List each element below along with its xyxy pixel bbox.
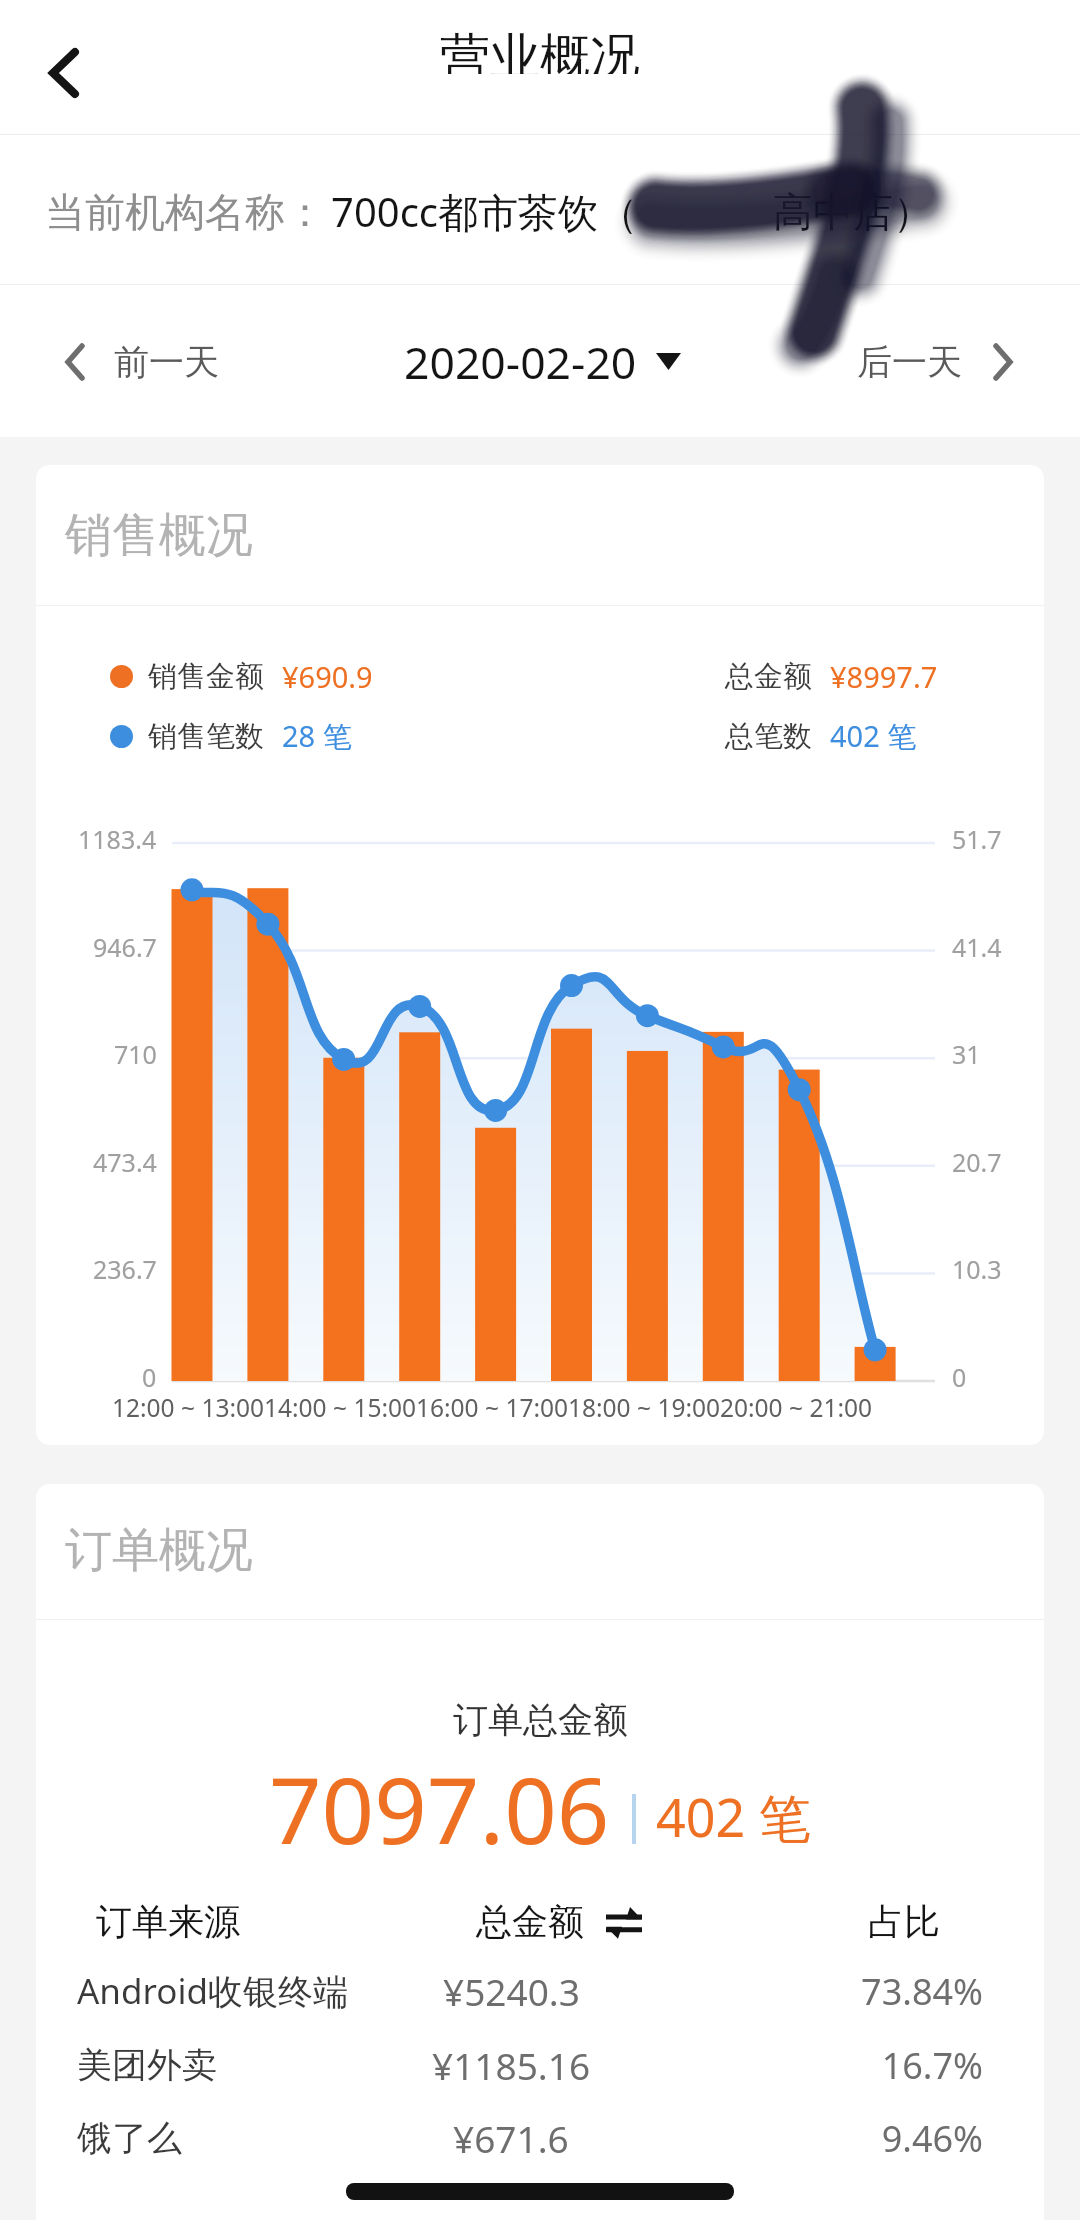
staticText: 51.7 bbox=[952, 822, 1002, 856]
staticText: ¥5240.3 bbox=[443, 1966, 580, 2016]
staticText: 占比 bbox=[868, 1899, 940, 1944]
staticText: ¥8997.7 bbox=[830, 657, 938, 696]
staticText: ¥1185.16 bbox=[432, 2040, 591, 2090]
staticText: 20.7 bbox=[952, 1145, 1002, 1179]
staticText: 饿了么 bbox=[77, 2116, 182, 2160]
staticText: 7097.06 bbox=[269, 1746, 610, 1858]
staticText: 402 笔 bbox=[656, 1781, 811, 1852]
staticText: 20:00 ~ 21:00 bbox=[720, 1391, 872, 1424]
staticText: 41.4 bbox=[952, 930, 1002, 964]
staticText: 9.46% bbox=[783, 2114, 983, 2163]
staticText: 31 bbox=[952, 1037, 981, 1071]
staticText: 1183.4 bbox=[78, 822, 157, 856]
button[interactable]: Sort by total amount bbox=[476, 1899, 642, 1944]
staticText: 16:00 ~ 17:00 bbox=[416, 1391, 568, 1424]
staticText: 订单总金额 bbox=[453, 1698, 628, 1742]
staticText: 236.7 bbox=[93, 1252, 157, 1286]
staticText: 473.4 bbox=[93, 1145, 157, 1179]
button[interactable]: Android收银终端 bbox=[36, 1955, 1044, 2027]
staticText: 12:00 ~ 13:00 bbox=[112, 1391, 264, 1424]
button[interactable]: 饿了么 bbox=[36, 2102, 1044, 2174]
staticText: 订单概况 bbox=[65, 1521, 253, 1580]
staticText: Android收银终端 bbox=[77, 1967, 349, 2015]
staticText: 前一天 bbox=[114, 340, 219, 384]
staticText: 28 笔 bbox=[282, 716, 352, 756]
staticText: 73.84% bbox=[783, 1967, 983, 2016]
staticText: 0 bbox=[142, 1360, 157, 1394]
button[interactable]: 后一天 bbox=[857, 318, 1018, 406]
staticText: ¥690.9 bbox=[282, 657, 373, 696]
staticText: 订单来源 bbox=[96, 1899, 240, 1944]
staticText: 销售金额 bbox=[148, 658, 264, 695]
staticText: 高中店） bbox=[773, 187, 933, 237]
staticText: 2020-02-20 bbox=[404, 331, 637, 392]
staticText: 当前机构名称： bbox=[45, 187, 325, 237]
staticText: 营业概况 bbox=[440, 26, 640, 74]
button[interactable]: 前一天 bbox=[60, 318, 219, 406]
staticText: 0 bbox=[952, 1360, 967, 1394]
staticText: 美团外卖 bbox=[77, 2043, 217, 2087]
staticText: 402 笔 bbox=[830, 716, 917, 756]
button[interactable]: 2020-02-20 bbox=[404, 309, 681, 414]
staticText: 700cc都市茶饮（ bbox=[331, 184, 639, 239]
staticText: 16.7% bbox=[783, 2041, 983, 2090]
staticText: 总金额 bbox=[476, 1899, 584, 1944]
button[interactable]: 美团外卖 bbox=[36, 2029, 1044, 2101]
staticText: 18:00 ~ 19:00 bbox=[568, 1391, 720, 1424]
staticText: 后一天 bbox=[857, 340, 962, 384]
button[interactable]: Back bbox=[6, 26, 102, 122]
staticText: 10.3 bbox=[952, 1252, 1002, 1286]
staticText: 14:00 ~ 15:00 bbox=[264, 1391, 416, 1424]
staticText: ¥671.6 bbox=[453, 2113, 569, 2163]
staticText: 710 bbox=[114, 1037, 157, 1071]
staticText: 总金额 bbox=[725, 658, 812, 695]
staticText: 销售概况 bbox=[65, 506, 253, 565]
staticText: 总笔数 bbox=[725, 718, 812, 755]
staticText: 946.7 bbox=[93, 930, 157, 964]
staticText: 销售笔数 bbox=[148, 718, 264, 755]
